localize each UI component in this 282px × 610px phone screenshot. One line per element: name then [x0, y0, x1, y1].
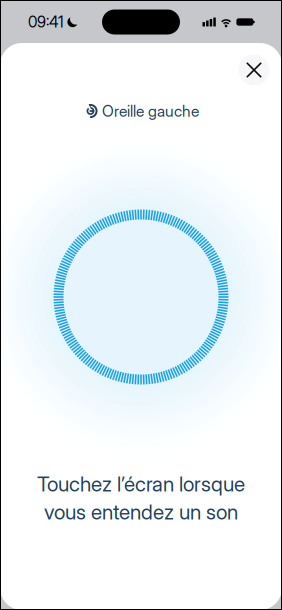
staticText: Oreille gauche: [102, 102, 199, 120]
button[interactable]: Fermer: [232, 48, 276, 92]
button[interactable]: Oreille gauche: [83, 102, 199, 120]
staticText: Touchez l’écran lorsque: [37, 471, 245, 496]
staticText: 09:41: [28, 13, 64, 31]
staticText: vous entendez un son: [44, 499, 238, 524]
